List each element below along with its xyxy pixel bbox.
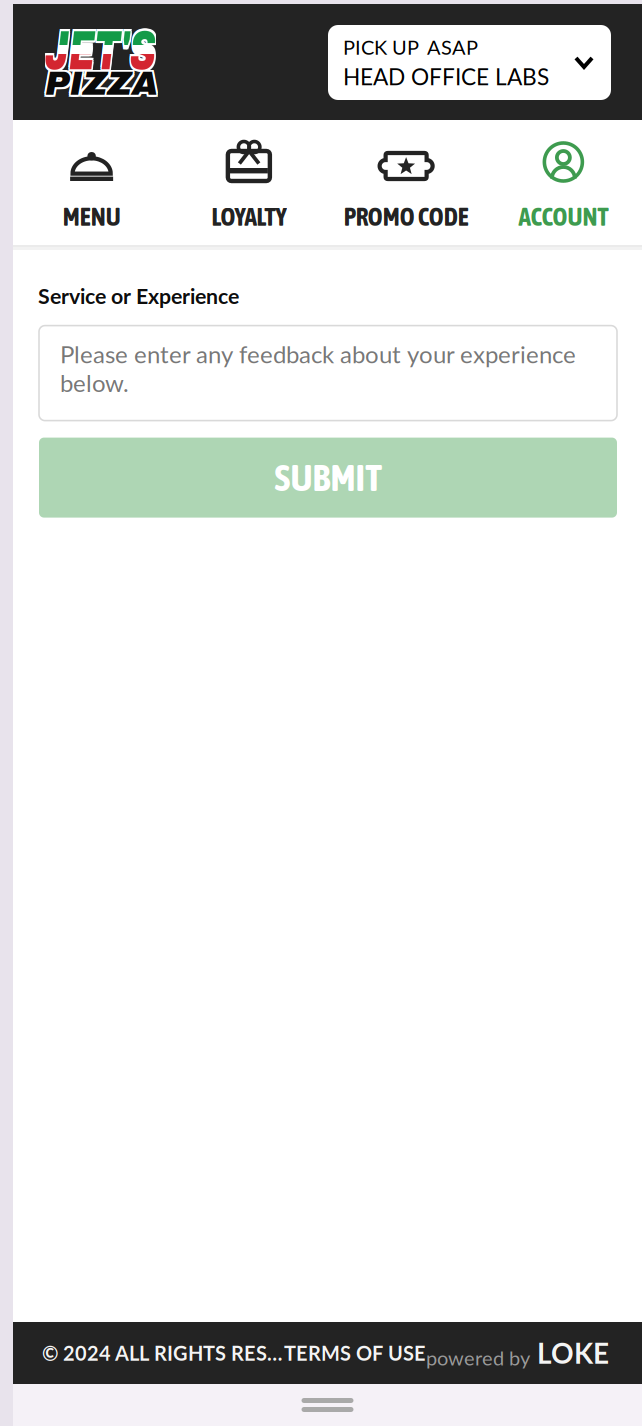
staticText: JET'S [43,20,216,81]
staticText: JET'S [45,18,218,79]
staticText: JET'S [43,20,216,81]
staticText: JET'S [47,18,220,79]
staticText: PIZZA [45,65,178,108]
staticText: JET'S [47,22,220,83]
staticText: LOKE [537,1336,609,1370]
staticText: PICK UP ASAP [343,35,478,59]
staticText: JET'S [45,22,218,83]
staticText: TERMS OF USE [284,1341,426,1365]
staticText: JET'S [43,22,216,83]
staticText: JET'S [45,18,218,79]
staticText: Please enter any feedback about your exp… [60,340,576,397]
staticText: PIZZA [43,63,176,106]
staticText: JET'S [43,18,216,79]
staticText: JET'S [47,20,220,81]
button[interactable]: PICK UP ASAP [328,25,611,100]
staticText: JET'S [45,20,218,81]
staticText: powered by [426,1346,530,1370]
button[interactable]: ACCOUNT [485,120,642,245]
staticText: JET'S [45,22,218,83]
staticText: JET'S [45,20,218,81]
staticText: JET'S [45,20,218,81]
staticText: JET'S [45,20,218,81]
button[interactable]: MENU [13,120,170,245]
staticText: PROMO CODE [344,202,469,231]
staticText: JET'S [47,22,220,83]
staticText: PIZZA [47,63,180,106]
staticText: SUBMIT [274,456,381,499]
staticText: JET'S [47,20,220,81]
staticText: JET'S [47,22,220,83]
staticText: Service or Experience [38,283,239,309]
staticText: JET'S [45,22,218,83]
staticText: LOYALTY [211,202,286,231]
staticText: HEAD OFFICE LABS [343,63,549,90]
staticText: PIZZA [45,65,178,108]
staticText: JET'S [43,22,216,83]
staticText: PIZZA [45,67,178,111]
staticText: JET'S [45,20,218,81]
staticText: PIZZA [45,63,178,106]
button[interactable]: SUBMIT [39,438,617,518]
staticText: JET'S [43,20,216,81]
button[interactable]: LOYALTY [170,120,327,245]
staticText: JET'S [47,18,220,79]
staticText: JET'S [43,18,216,79]
staticText: JET'S [45,20,218,81]
staticText: PIZZA [43,65,176,108]
staticText: PIZZA [47,67,180,111]
button[interactable]: TERMS OF USE [284,1341,426,1365]
staticText: MENU [63,202,121,231]
staticText: © 2024 ALL RIGHTS RESERVED [42,1341,284,1365]
button[interactable]: PROMO CODE [327,120,485,245]
staticText: JET'S [45,18,218,79]
staticText: PIZZA [47,65,180,108]
staticText: JET'S [43,18,216,79]
staticText: JET'S [43,22,216,83]
staticText: ACCOUNT [518,202,608,231]
staticText: PIZZA [43,67,176,111]
staticText: JET'S [47,20,220,81]
staticText: JET'S [47,18,220,79]
